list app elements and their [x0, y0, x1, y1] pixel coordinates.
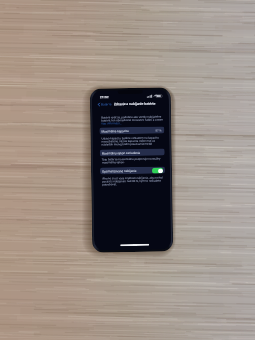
button[interactable]: Optimalizované nabíjanie: [100, 166, 165, 174]
staticText: Maximálna kapacita: [101, 129, 129, 133]
button[interactable]: Optimalizované nabíjanie prepínač: [152, 167, 163, 174]
staticText: 21:02: [100, 94, 109, 98]
staticText: Zdravie a nabíjanie batérie: [114, 102, 156, 106]
staticText: Optimalizované nabíjanie: [102, 169, 137, 173]
staticText: Viac informácií...: [101, 121, 122, 125]
staticText: iPhone si ucí vase zvyklosti nabíjania, …: [102, 175, 165, 186]
staticText: Maximálny výkon zariadenia: [102, 151, 141, 155]
staticText: Táto batéria momentálne podporuje normál…: [102, 156, 165, 164]
staticText: 87 %: [155, 128, 162, 133]
staticText: Udáva kapacitu batérie vzhladom na kapac…: [101, 135, 165, 146]
button[interactable]: Späť na Batéria: [98, 102, 112, 106]
button[interactable]: Maximálny výkon zariadenia: [100, 148, 165, 156]
staticText: Batérie vydrzia, podobne ako vsetky nabi…: [101, 114, 164, 122]
button[interactable]: Maximálna kapacita: [99, 126, 164, 134]
staticText: Batéria: [101, 102, 112, 106]
